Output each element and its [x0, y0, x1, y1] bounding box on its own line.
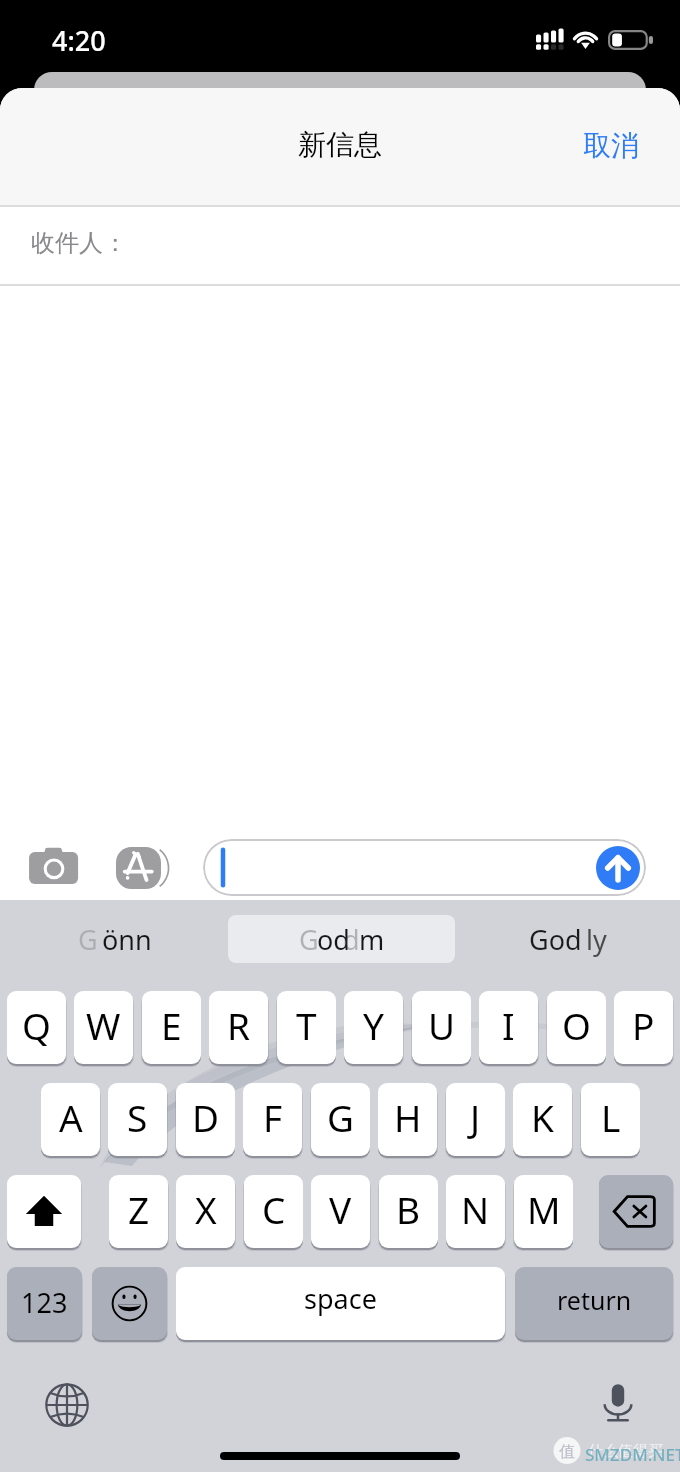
staticText: J [470, 1092, 481, 1142]
button[interactable]: Message text field [203, 839, 646, 896]
button[interactable]: P [614, 991, 673, 1064]
button[interactable]: G [311, 1083, 370, 1156]
button[interactable]: 123 [7, 1267, 82, 1340]
button[interactable]: D [176, 1083, 235, 1156]
button[interactable]: 取消 [559, 112, 663, 179]
button[interactable]: U [412, 991, 471, 1064]
button[interactable]: M [514, 1175, 573, 1248]
button[interactable]: space [176, 1267, 505, 1340]
staticText: od [317, 921, 350, 958]
staticText: B [396, 1184, 421, 1234]
button[interactable]: S [108, 1083, 167, 1156]
staticText: F [263, 1092, 283, 1142]
button[interactable]: Q [7, 991, 66, 1064]
button[interactable]: Backspace [599, 1175, 673, 1248]
staticText: I [502, 1000, 515, 1050]
staticText: G [327, 1092, 354, 1142]
staticText: O [562, 1000, 591, 1050]
button[interactable]: J [446, 1083, 505, 1156]
button[interactable]: K [513, 1083, 572, 1156]
button[interactable]: Dictate [595, 1380, 641, 1426]
button[interactable]: N [446, 1175, 505, 1248]
staticText: 新信息 [298, 127, 382, 162]
button[interactable]: Emoji [92, 1267, 167, 1340]
staticText: H [394, 1092, 422, 1142]
staticText: D [192, 1092, 220, 1142]
button[interactable]: R [209, 991, 268, 1064]
staticText: M [527, 1184, 561, 1234]
button[interactable]: H [378, 1083, 437, 1156]
staticText: önn [102, 921, 152, 958]
staticText: A [59, 1092, 83, 1142]
button[interactable]: return [515, 1267, 673, 1340]
staticText: God [529, 921, 582, 958]
button[interactable]: Shift [7, 1175, 81, 1248]
button[interactable]: C [244, 1175, 303, 1248]
button[interactable]: W [74, 991, 133, 1064]
button[interactable]: App Store [108, 838, 178, 898]
button[interactable]: Send [596, 846, 640, 890]
staticText: V [329, 1184, 352, 1234]
staticText: T [296, 1000, 317, 1050]
staticText: space [304, 1280, 377, 1317]
staticText: return [557, 1283, 632, 1317]
button[interactable]: A [41, 1083, 100, 1156]
button[interactable]: E [142, 991, 201, 1064]
staticText: 什么值得买 [588, 1442, 663, 1461]
staticText: Y [363, 1000, 384, 1050]
button[interactable]: God [467, 915, 667, 963]
button[interactable]: 收件人： [0, 207, 680, 286]
staticText: SMZDM.NET [585, 1443, 680, 1466]
button[interactable]: F [243, 1083, 302, 1156]
staticText: E [161, 1000, 182, 1050]
staticText: 收件人： [31, 228, 127, 258]
staticText: G [78, 921, 98, 958]
staticText: 4:20 [52, 22, 106, 59]
button[interactable]: L [581, 1083, 640, 1156]
staticText: X [195, 1184, 217, 1234]
button[interactable]: V [311, 1175, 370, 1248]
button[interactable]: Switch keyboard [44, 1382, 90, 1428]
staticText: 取消 [583, 128, 639, 163]
staticText: 值 [559, 1442, 575, 1462]
button[interactable]: Camera [26, 840, 82, 896]
button[interactable]: Y [344, 991, 403, 1064]
button[interactable]: G [228, 915, 455, 963]
staticText: L [601, 1092, 621, 1142]
staticText: R [227, 1000, 251, 1050]
staticText: Z [128, 1184, 150, 1234]
staticText: d [343, 921, 360, 958]
button[interactable]: O [547, 991, 606, 1064]
button[interactable]: T [277, 991, 336, 1064]
staticText: U [428, 1000, 456, 1050]
staticText: C [262, 1184, 286, 1234]
staticText: 123 [21, 1284, 68, 1321]
staticText: W [86, 1000, 121, 1050]
staticText: K [531, 1092, 554, 1142]
button[interactable]: B [379, 1175, 438, 1248]
staticText: ly [586, 921, 607, 958]
button[interactable]: X [176, 1175, 235, 1248]
staticText: N [461, 1184, 490, 1234]
button[interactable]: I [479, 991, 538, 1064]
staticText: G [299, 921, 319, 958]
staticText: m [359, 921, 385, 958]
staticText: S [127, 1092, 148, 1142]
staticText: P [632, 1000, 655, 1050]
button[interactable]: Z [109, 1175, 168, 1248]
button[interactable]: G [18, 915, 218, 963]
staticText: Q [22, 1000, 51, 1050]
